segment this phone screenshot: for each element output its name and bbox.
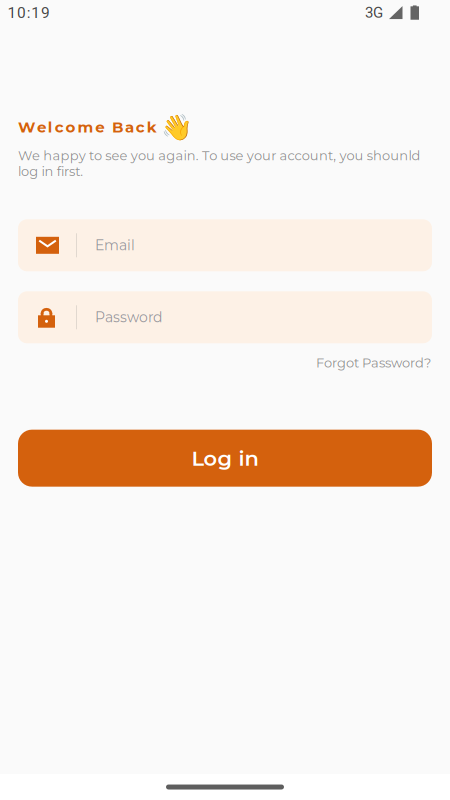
staticText: We happy to see you again. To use your a… xyxy=(18,148,420,179)
button[interactable]: Email xyxy=(18,219,432,271)
staticText: 3G xyxy=(365,4,383,21)
staticText: 👋 xyxy=(161,113,193,142)
button[interactable]: Password xyxy=(18,291,432,343)
staticText: 10:19 xyxy=(7,3,50,22)
staticText: Password xyxy=(95,309,162,326)
staticText: Forgot Password? xyxy=(316,355,431,371)
staticText: Log in xyxy=(191,445,258,471)
staticText: Email xyxy=(95,237,135,254)
button[interactable]: Forgot Password? xyxy=(316,355,431,371)
button[interactable]: Log in xyxy=(18,430,432,487)
staticText: Welcome Back xyxy=(18,118,157,136)
